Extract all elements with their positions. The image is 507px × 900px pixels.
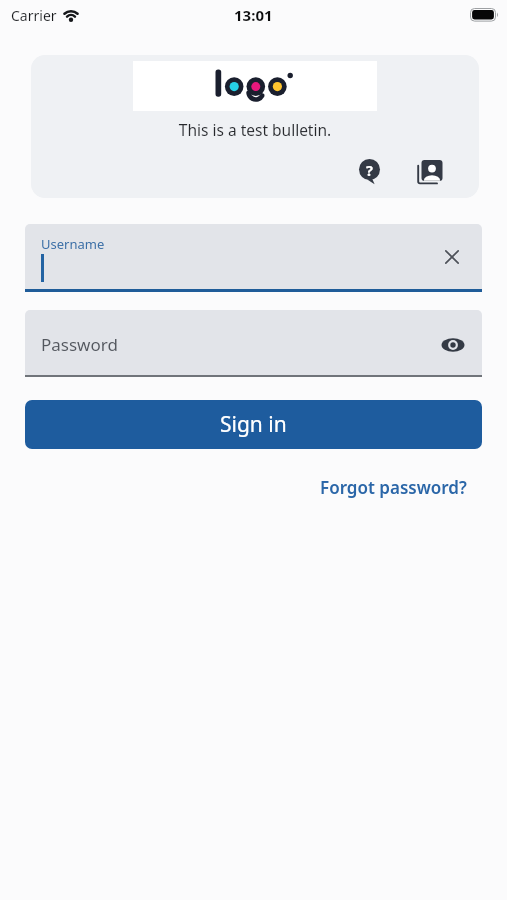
button[interactable] [441,337,465,353]
button[interactable] [417,159,443,185]
staticText: Carrier [11,6,57,25]
staticText: Username [41,235,105,253]
staticText: Sign in [220,410,287,439]
button[interactable]: Username [25,224,482,292]
button[interactable]: Sign in [25,400,482,449]
button[interactable] [445,250,459,264]
button[interactable]: Password [25,310,482,377]
staticText: Password [41,333,118,356]
staticText: This is a test bulletin. [31,119,479,140]
button[interactable]: ? [359,159,381,185]
staticText: ? [366,160,373,180]
button[interactable]: Forgot password? [320,476,467,499]
staticText: 13:01 [234,5,273,25]
